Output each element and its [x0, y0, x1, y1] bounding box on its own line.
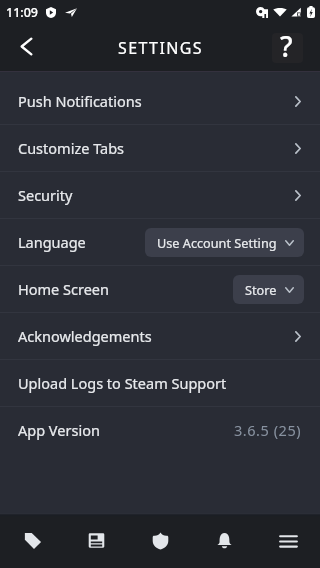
staticText: Language — [18, 232, 86, 252]
button[interactable]: Home Screen — [0, 266, 320, 312]
staticText: ? — [280, 33, 293, 57]
button[interactable]: Use Account Setting — [145, 228, 304, 257]
button[interactable]: Back — [8, 29, 45, 66]
button[interactable]: Security — [0, 172, 320, 218]
button[interactable]: Help — [272, 33, 303, 63]
staticText: Acknowledgements — [18, 326, 152, 346]
button[interactable]: Customize Tabs — [0, 125, 320, 171]
staticText: SETTINGS — [118, 37, 204, 59]
button[interactable]: News — [64, 513, 128, 568]
button[interactable]: Acknowledgements — [0, 313, 320, 359]
button[interactable]: Safeguard — [128, 513, 192, 568]
button[interactable]: Push Notifications — [0, 78, 320, 124]
staticText: Customize Tabs — [18, 138, 125, 158]
staticText: 11:09 — [6, 4, 39, 21]
staticText: Security — [18, 185, 73, 205]
button[interactable]: Upload Logs to Steam Support — [0, 360, 320, 406]
button[interactable]: Store — [0, 513, 64, 568]
staticText: Use Account Setting — [157, 234, 277, 251]
button[interactable]: Menu — [256, 513, 320, 568]
button[interactable]: App Version — [0, 407, 320, 453]
staticText: Upload Logs to Steam Support — [18, 373, 227, 393]
button[interactable]: Language — [0, 219, 320, 265]
button[interactable]: Store — [233, 275, 304, 304]
staticText: Home Screen — [18, 279, 109, 299]
staticText: App Version — [18, 420, 100, 440]
button[interactable]: Notifications — [192, 513, 256, 568]
staticText: 3.6.5 (25) — [234, 420, 302, 440]
staticText: Push Notifications — [18, 91, 142, 111]
staticText: Store — [245, 281, 277, 298]
